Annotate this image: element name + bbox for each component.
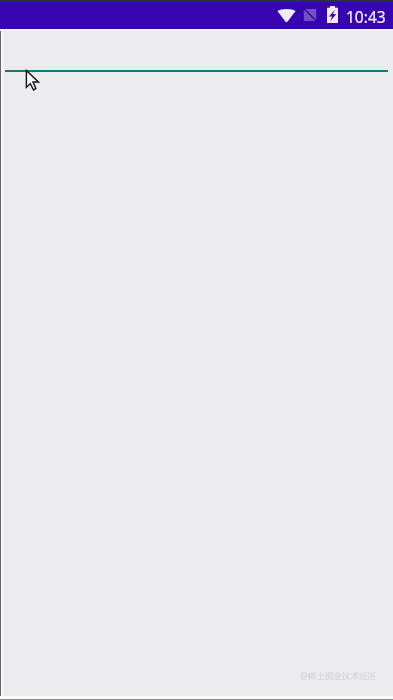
staticText: @稀土掘金技术社区 — [300, 670, 377, 682]
button[interactable]: Divider — [5, 70, 388, 72]
button[interactable]: Battery charging — [327, 6, 338, 23]
button[interactable]: Wi-Fi connected — [277, 8, 296, 22]
button[interactable]: 10:43 — [346, 6, 386, 27]
button[interactable]: No mobile signal — [303, 8, 317, 22]
